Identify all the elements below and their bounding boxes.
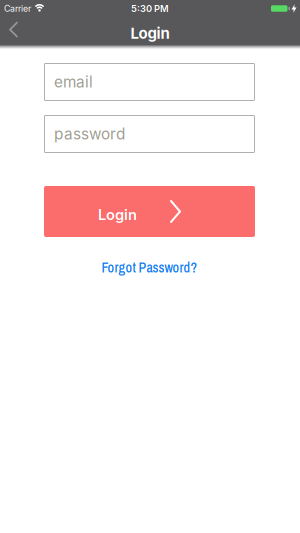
staticText: Forgot Password? <box>101 258 197 277</box>
button[interactable]: Forgot Password? <box>95 254 203 281</box>
textField[interactable]: password <box>54 125 255 143</box>
button[interactable]: Back <box>0 18 30 44</box>
textField[interactable]: email <box>54 73 255 91</box>
button[interactable]: Login <box>44 186 255 237</box>
staticText: password <box>54 125 125 143</box>
staticText: 5:30 PM <box>131 3 169 14</box>
staticText: Carrier <box>4 3 31 14</box>
staticText: email <box>54 73 93 91</box>
staticText: Login <box>98 206 137 223</box>
staticText: Login <box>130 24 169 42</box>
